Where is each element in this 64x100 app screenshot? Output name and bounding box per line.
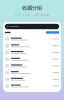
button[interactable] (3, 76, 61, 83)
staticText: 共 8 个分组 · 126 条收藏 (14, 13, 49, 17)
button[interactable] (3, 83, 61, 89)
button[interactable] (3, 42, 61, 49)
button[interactable] (3, 49, 61, 56)
button[interactable] (3, 62, 61, 69)
staticText: 收藏分组 (22, 5, 42, 11)
button[interactable]: New group (46, 31, 59, 34)
button[interactable]: Search (5, 24, 59, 29)
button[interactable] (3, 36, 61, 42)
button[interactable] (3, 69, 61, 76)
button[interactable] (3, 56, 61, 62)
